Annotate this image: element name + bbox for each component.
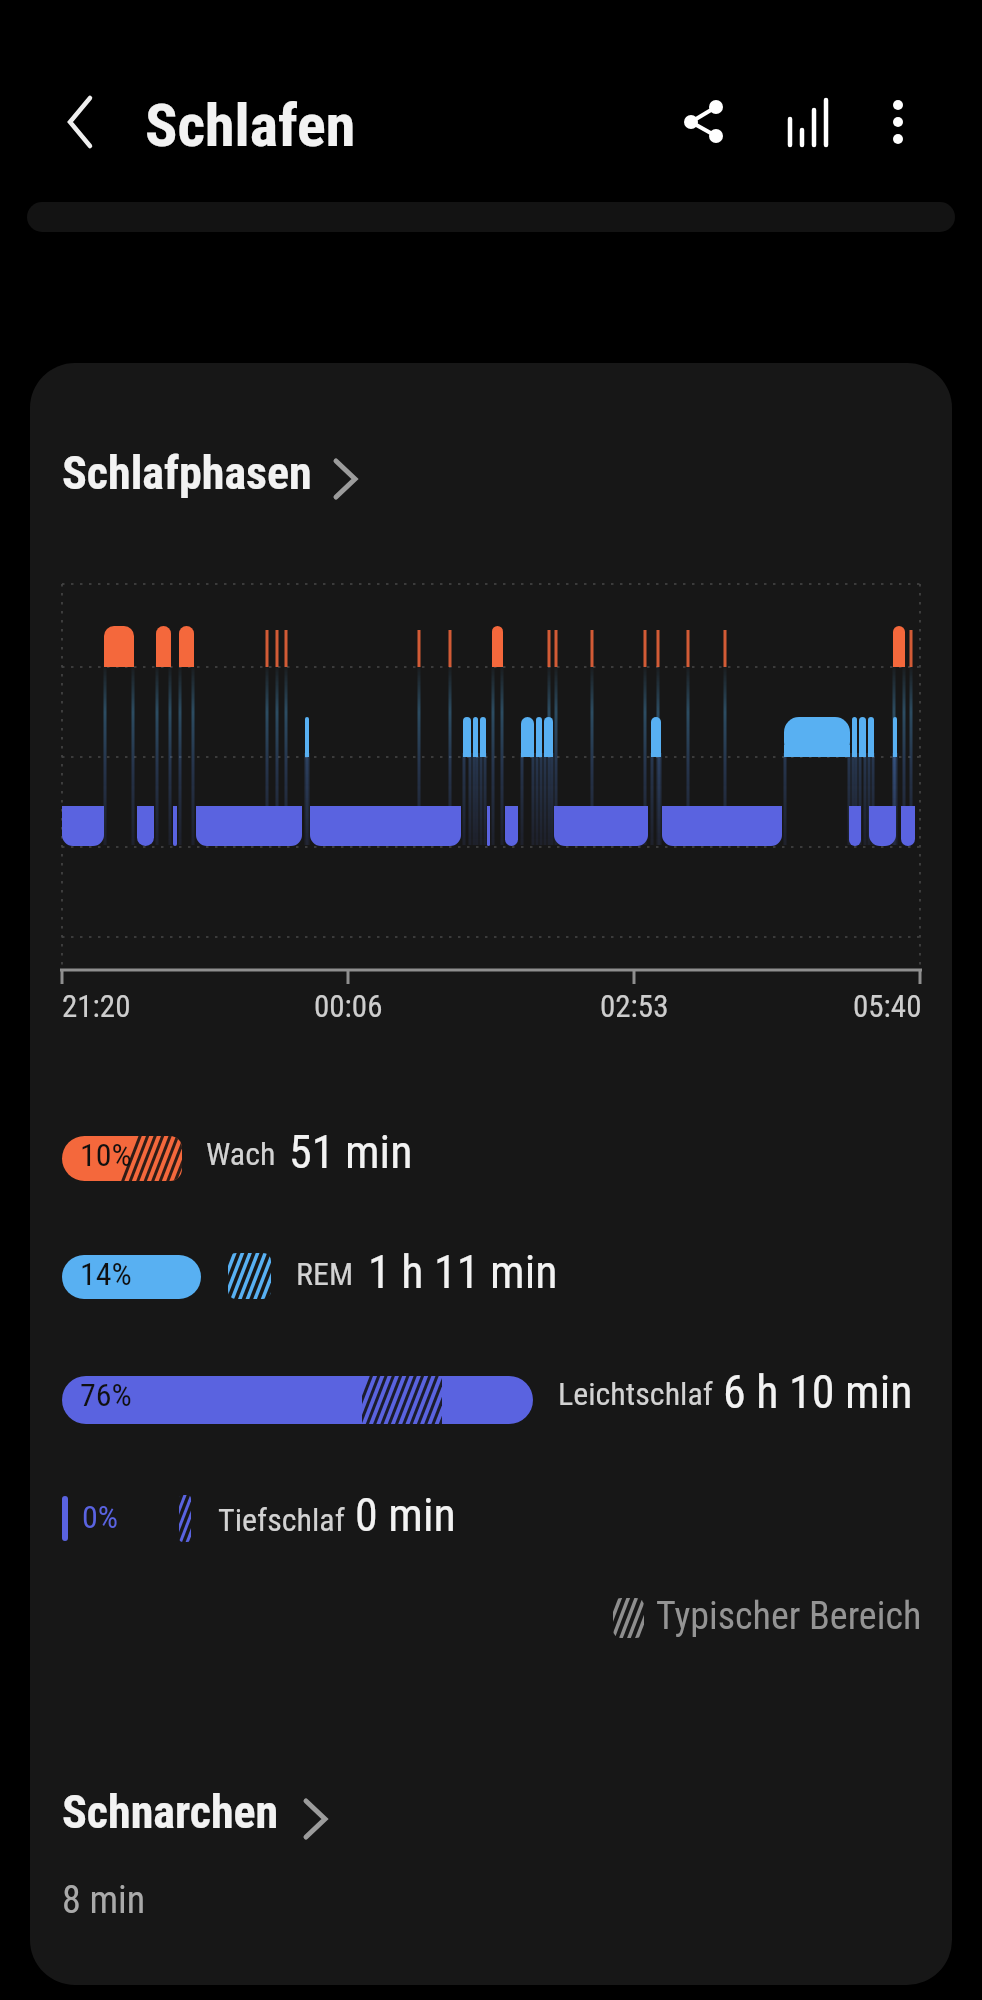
button[interactable]: Schnarchen <box>52 1780 342 1850</box>
staticText: 8 min <box>62 1878 146 1923</box>
button[interactable] <box>870 88 926 154</box>
button[interactable]: Schlafphasen <box>52 440 382 510</box>
staticText: Wach <box>206 1135 276 1173</box>
staticText: 6 h 10 min <box>723 1365 913 1419</box>
staticText: Schlafphasen <box>62 446 312 500</box>
button[interactable] <box>672 90 738 156</box>
staticText: Schnarchen <box>62 1785 279 1839</box>
staticText: 02:53 <box>600 988 669 1024</box>
staticText: Tiefschlaf <box>218 1501 345 1539</box>
staticText: 14% <box>80 1255 132 1293</box>
staticText: 0% <box>82 1498 119 1536</box>
button[interactable] <box>775 88 841 154</box>
staticText: 05:40 <box>853 988 922 1024</box>
staticText: 51 min <box>289 1125 413 1179</box>
button[interactable] <box>48 90 98 156</box>
staticText: 0 min <box>355 1488 456 1542</box>
staticText: 10% <box>80 1136 132 1174</box>
staticText: 21:20 <box>62 988 131 1024</box>
staticText: Typischer Bereich <box>656 1594 922 1639</box>
staticText: 1 h 11 min <box>368 1245 558 1299</box>
staticText: REM <box>296 1255 354 1293</box>
staticText: Leichtschlaf <box>558 1375 713 1413</box>
staticText: 76% <box>80 1376 132 1414</box>
staticText: 00:06 <box>314 988 383 1024</box>
staticText: Schlafen <box>145 90 356 160</box>
